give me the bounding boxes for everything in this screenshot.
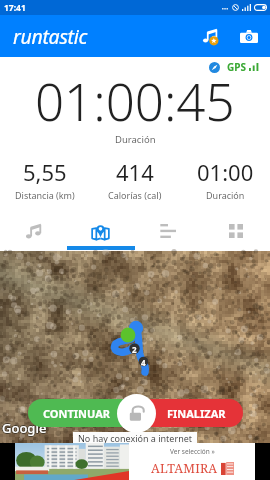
- staticText: ALTAMIRA: [151, 460, 218, 477]
- staticText: runtastic: [13, 23, 87, 50]
- staticText: GPS: [227, 60, 246, 74]
- staticText: Calorías (cal): [108, 189, 162, 201]
- staticText: Duración: [115, 133, 156, 146]
- staticText: 414: [116, 157, 154, 187]
- staticText: Google: [2, 418, 47, 436]
- staticText: No hay conexión a internet: [78, 432, 193, 443]
- staticText: FINALIZAR: [167, 406, 226, 421]
- staticText: Google: [2, 420, 47, 438]
- staticText: CONTINUAR: [43, 406, 111, 421]
- staticText: 01:00:45: [35, 66, 235, 135]
- button[interactable]: Statistics: [134, 216, 202, 246]
- staticText: 01:00: [197, 157, 254, 187]
- button[interactable]: Map: [67, 216, 134, 246]
- staticText: Google: [2, 419, 47, 437]
- staticText: Distancia (km): [15, 189, 75, 201]
- button[interactable]: Camera: [231, 18, 267, 54]
- button[interactable]: Grid: [202, 216, 270, 246]
- staticText: Duración: [206, 189, 245, 201]
- staticText: Ver selección »: [170, 447, 215, 456]
- button[interactable]: FINALIZAR: [133, 399, 243, 427]
- staticText: 17:41: [4, 2, 26, 14]
- staticText: Google: [1, 419, 46, 437]
- staticText: 2: [132, 344, 137, 355]
- staticText: 4: [141, 357, 146, 368]
- button[interactable]: CONTINUAR: [28, 399, 138, 427]
- button[interactable]: Unlock: [117, 394, 156, 433]
- staticText: 5,55: [23, 157, 67, 187]
- staticText: Google: [3, 419, 48, 437]
- button[interactable]: Music: [0, 216, 67, 246]
- button[interactable]: Music: [194, 20, 226, 52]
